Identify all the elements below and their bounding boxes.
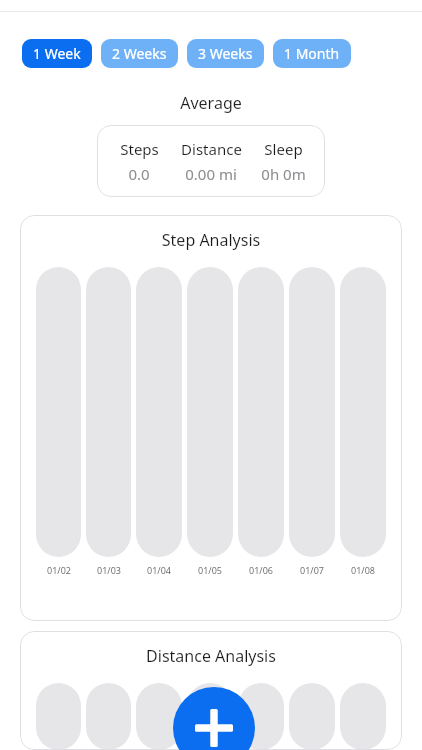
staticText: 01/08 [351, 564, 375, 576]
staticText: 0.00 mi [185, 164, 237, 184]
button[interactable]: 2 Weeks [101, 39, 178, 68]
button[interactable]: Add [173, 687, 255, 750]
staticText: 01/02 [47, 564, 71, 576]
button[interactable]: 3 Weeks [187, 39, 264, 68]
staticText: 1 Month [284, 44, 340, 63]
staticText: Distance Analysis [20, 645, 402, 667]
button[interactable]: Steps [97, 125, 325, 197]
button[interactable]: Distance Analysis [20, 631, 402, 750]
staticText: 0.0 [128, 164, 150, 184]
button[interactable]: Step Analysis [20, 215, 402, 621]
staticText: 01/04 [147, 564, 171, 576]
staticText: 01/06 [249, 564, 273, 576]
staticText: 0h 0m [261, 164, 306, 184]
staticText: Step Analysis [20, 229, 402, 251]
button[interactable]: 1 Month [273, 39, 351, 68]
staticText: 1 Week [33, 44, 81, 63]
staticText: Sleep [264, 139, 303, 159]
staticText: Steps [120, 139, 159, 159]
staticText: 01/03 [97, 564, 121, 576]
staticText: 2 Weeks [112, 44, 167, 63]
staticText: Distance [181, 139, 242, 159]
button[interactable]: 1 Week [22, 39, 92, 68]
staticText: 01/07 [300, 564, 324, 576]
staticText: Average [0, 92, 422, 114]
staticText: 3 Weeks [198, 44, 253, 63]
staticText: 01/05 [198, 564, 222, 576]
